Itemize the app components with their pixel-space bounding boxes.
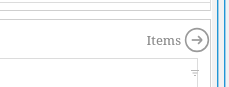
button[interactable]: Go to items: [184, 27, 210, 53]
button[interactable]: Items: [146, 31, 181, 49]
